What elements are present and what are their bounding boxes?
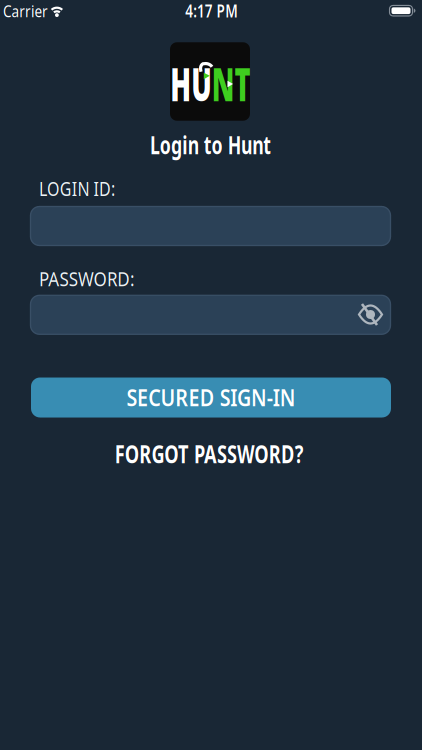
staticText: FORGOT PASSWORD? [78,437,340,470]
staticText: HU [143,54,212,114]
button[interactable]: Show password [357,303,383,325]
staticText: Login to Hunt [124,128,297,161]
staticText: SECURED SIGN-IN [114,382,308,412]
button[interactable]: FORGOT PASSWORD? [78,437,340,470]
button[interactable]: Login ID [30,206,390,245]
button[interactable]: Password [30,295,390,334]
staticText: LOGIN ID: [39,175,134,202]
staticText: 4:17 PM [178,0,245,22]
staticText: PASSWORD: [39,265,151,292]
button[interactable]: SECURED SIGN-IN [31,377,391,417]
staticText: Carrier [0,0,52,22]
staticText: NT [212,54,277,114]
